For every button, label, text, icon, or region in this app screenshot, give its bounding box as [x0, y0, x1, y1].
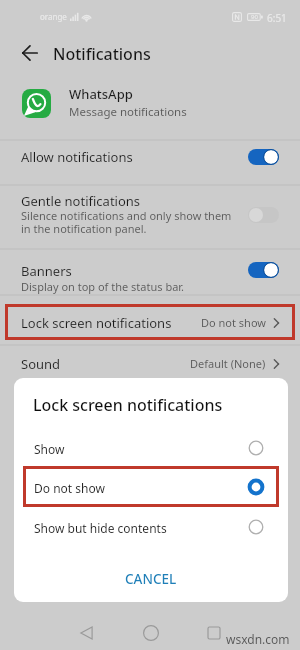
button[interactable] [0, 345, 300, 378]
staticText: Silence notifications and only show them [21, 208, 232, 223]
button[interactable]: Toggle [248, 207, 279, 223]
staticText: WhatsApp [69, 85, 133, 103]
staticText: in the notification panel. [21, 221, 147, 236]
staticText: Display on top of the status bar. [21, 279, 185, 294]
button[interactable]: Toggle [248, 149, 279, 165]
staticText: Gentle notifications [21, 192, 141, 210]
button[interactable]: Recent apps [196, 615, 231, 650]
staticText: 6:51 [267, 11, 287, 25]
staticText: Lock screen notifications [33, 394, 223, 416]
button[interactable]: Home [133, 615, 168, 650]
button[interactable] [0, 78, 300, 138]
staticText: Notifications [53, 43, 151, 65]
staticText: Allow notifications [21, 148, 133, 166]
staticText: Sound [21, 355, 61, 373]
button[interactable]: Do not show [14, 473, 288, 503]
staticText: Lock screen notifications [21, 314, 172, 332]
staticText: Show [34, 441, 65, 457]
staticText: Message notifications [69, 104, 187, 120]
button[interactable]: Back [69, 615, 104, 650]
button[interactable]: Back [22, 45, 38, 61]
staticText: Show but hide contents [34, 520, 167, 536]
button[interactable]: Show [14, 434, 288, 464]
staticText: orange [40, 11, 67, 22]
staticText: wsxdn.com [226, 631, 290, 647]
button[interactable]: CANCEL [117, 566, 185, 592]
staticText: CANCEL [125, 570, 177, 588]
button[interactable] [0, 185, 300, 248]
button[interactable]: Toggle [248, 262, 279, 278]
staticText: 90 [251, 13, 258, 21]
staticText: Do not show [201, 315, 266, 330]
staticText: Do not show [34, 480, 105, 496]
button[interactable] [0, 295, 300, 344]
staticText: Default (None) [190, 356, 266, 371]
button[interactable]: Show but hide contents [14, 513, 288, 543]
button[interactable] [0, 249, 300, 294]
button[interactable] [0, 140, 300, 184]
staticText: Banners [21, 262, 72, 280]
